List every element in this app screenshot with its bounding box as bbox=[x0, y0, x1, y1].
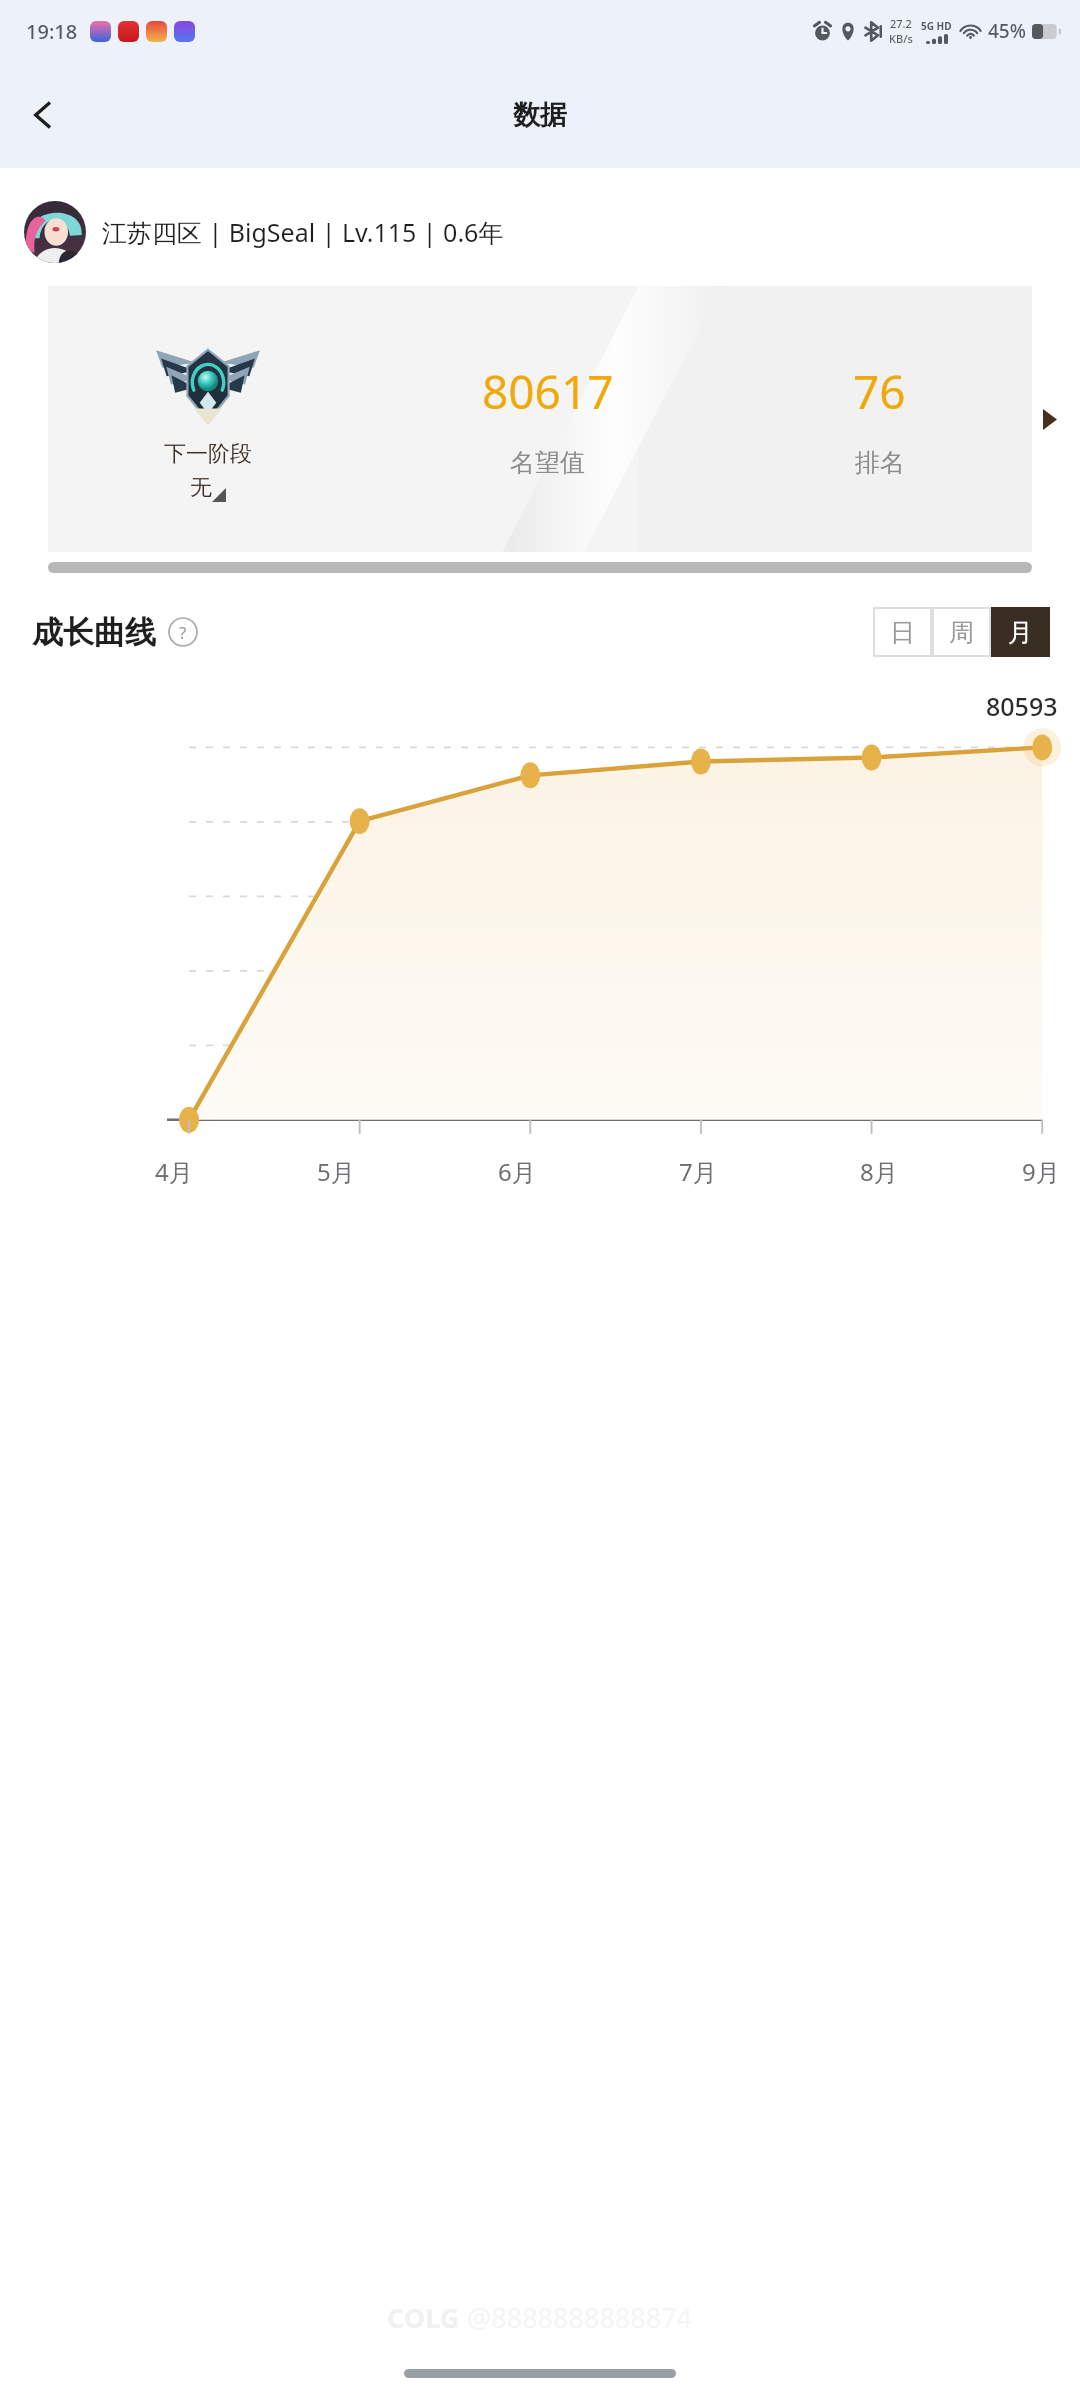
staticText: 下一阶段 bbox=[164, 440, 252, 468]
button[interactable]: 日 bbox=[873, 607, 932, 657]
staticText: 成长曲线 bbox=[32, 613, 156, 652]
staticText: @8888888888874 bbox=[467, 2299, 693, 2336]
button[interactable]: 周 bbox=[932, 607, 991, 657]
staticText: 6月 bbox=[498, 1155, 536, 1188]
staticText: 无 bbox=[190, 474, 212, 502]
staticText: 4月 bbox=[155, 1155, 193, 1188]
staticText: 8月 bbox=[860, 1155, 898, 1188]
staticText: 5G HD bbox=[921, 19, 952, 33]
button[interactable]: 月 bbox=[991, 607, 1050, 657]
button[interactable]: 江苏四区 | BigSeal | Lv.115 | 0.6年 bbox=[0, 198, 1080, 266]
staticText: 江苏四区 | BigSeal | Lv.115 | 0.6年 bbox=[102, 215, 504, 249]
button[interactable]: Help bbox=[168, 617, 198, 647]
staticText: 45% bbox=[988, 18, 1026, 44]
staticText: COLG bbox=[387, 2299, 467, 2336]
staticText: 80593 bbox=[986, 689, 1058, 723]
staticText: 名望值 bbox=[510, 447, 585, 478]
button[interactable]: More bbox=[1032, 401, 1068, 437]
button[interactable]: Back bbox=[10, 82, 76, 148]
staticText: 日 bbox=[890, 617, 915, 648]
staticText: 19:18 bbox=[26, 18, 78, 45]
button[interactable]: 下一阶段 bbox=[48, 286, 1032, 552]
staticText: 7月 bbox=[679, 1155, 717, 1188]
staticText: 76 bbox=[853, 360, 906, 423]
staticText: 5月 bbox=[317, 1155, 355, 1188]
staticText: KB/s bbox=[889, 31, 913, 46]
staticText: ? bbox=[179, 621, 187, 644]
staticText: 数据 bbox=[513, 98, 567, 132]
staticText: 周 bbox=[949, 617, 974, 648]
staticText: 9月 bbox=[1022, 1155, 1060, 1188]
staticText: 80617 bbox=[482, 360, 614, 423]
staticText: 27.2 bbox=[890, 16, 912, 31]
staticText: 排名 bbox=[855, 447, 905, 478]
staticText: 月 bbox=[1008, 617, 1033, 648]
